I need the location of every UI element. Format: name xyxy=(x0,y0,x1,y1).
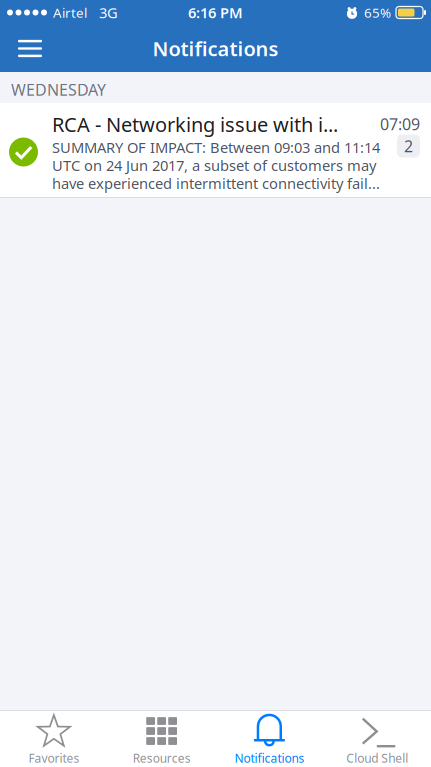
staticText: WEDNESDAY xyxy=(11,79,106,100)
button[interactable]: RCA - Networking issue with i... xyxy=(0,103,431,197)
staticText: SUMMARY OF IMPACT: Between 09:03 and 11:… xyxy=(52,138,380,157)
button[interactable]: Favorites xyxy=(0,708,108,767)
staticText: UTC on 24 Jun 2017, a subset of customer… xyxy=(52,155,376,175)
staticText: Resources xyxy=(133,750,191,766)
staticText: have experienced intermittent connectivi… xyxy=(52,173,380,193)
staticText: Notifications xyxy=(234,750,304,766)
button[interactable]: Menu xyxy=(7,25,53,71)
button[interactable]: Cloud Shell xyxy=(323,708,431,767)
staticText: Cloud Shell xyxy=(346,750,408,766)
staticText: Notifications xyxy=(152,35,278,62)
staticText: Airtel xyxy=(53,4,87,21)
staticText: 65% xyxy=(364,4,391,21)
staticText: 3G xyxy=(99,3,118,22)
staticText: 07:09 xyxy=(380,113,420,134)
button[interactable]: Notifications xyxy=(215,708,323,767)
staticText: RCA - Networking issue with i... xyxy=(52,111,338,138)
staticText: Favorites xyxy=(28,750,79,766)
staticText: 2 xyxy=(404,135,413,157)
staticText: 6:16 PM xyxy=(188,3,243,22)
button[interactable]: Resources xyxy=(108,708,216,767)
